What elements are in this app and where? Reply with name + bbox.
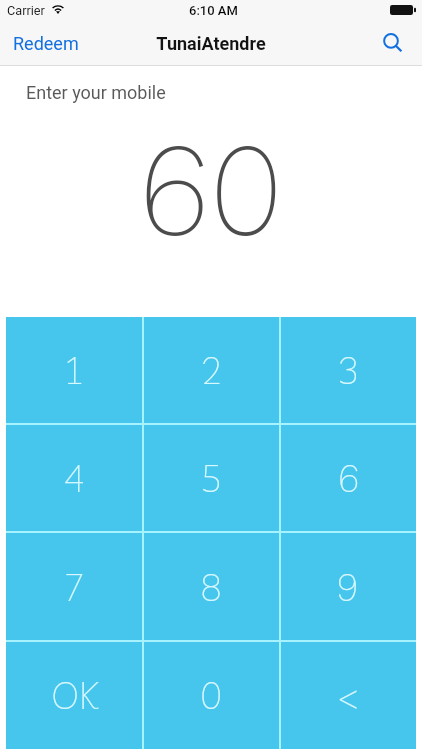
button[interactable]: 8: [144, 533, 279, 640]
staticText: Enter your mobile: [26, 82, 166, 103]
button[interactable]: 3: [281, 317, 416, 423]
staticText: 60: [0, 110, 420, 266]
staticText: 3: [337, 347, 360, 393]
staticText: 7: [63, 564, 86, 610]
staticText: 4: [63, 455, 86, 501]
staticText: 8: [200, 564, 223, 610]
button[interactable]: 6: [281, 425, 416, 531]
button[interactable]: 0: [144, 642, 279, 749]
button[interactable]: OK: [6, 642, 142, 749]
staticText: <: [337, 672, 360, 718]
staticText: 2: [200, 347, 223, 393]
button[interactable]: <: [281, 642, 416, 749]
staticText: Redeem: [13, 33, 79, 54]
staticText: 0: [200, 672, 223, 718]
staticText: TunaiAtendre: [0, 33, 422, 54]
staticText: Carrier: [7, 3, 45, 18]
staticText: 1: [63, 347, 86, 393]
staticText: OK: [51, 672, 98, 718]
button[interactable]: Search: [372, 26, 412, 64]
staticText: 5: [200, 455, 223, 501]
button[interactable]: 5: [144, 425, 279, 531]
staticText: 6:10 AM: [189, 3, 238, 18]
button[interactable]: 2: [144, 317, 279, 423]
button[interactable]: Redeem: [3, 24, 89, 62]
staticText: 6: [337, 455, 360, 501]
button[interactable]: 4: [6, 425, 142, 531]
button[interactable]: 9: [281, 533, 416, 640]
staticText: 9: [337, 564, 360, 610]
button[interactable]: 7: [6, 533, 142, 640]
button[interactable]: 1: [6, 317, 142, 423]
